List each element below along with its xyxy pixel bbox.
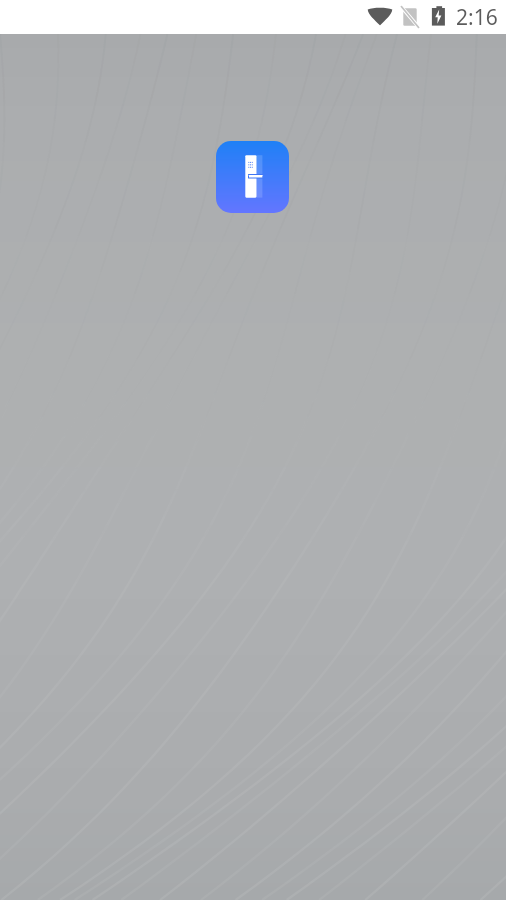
button[interactable]: Smart door lock app	[216, 141, 289, 213]
staticText: 2:16	[456, 3, 498, 32]
